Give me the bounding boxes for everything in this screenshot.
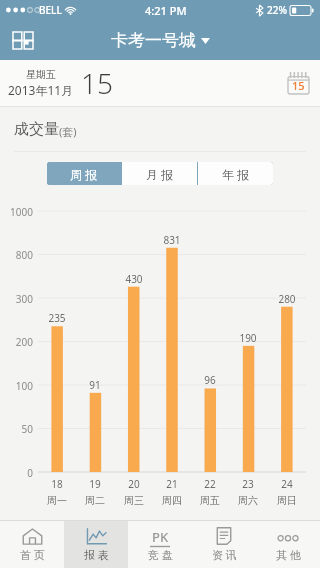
staticText: 其 他: [276, 547, 301, 562]
staticText: PK: [152, 528, 169, 545]
staticText: (套): [59, 124, 77, 139]
staticText: 周一: [38, 494, 76, 507]
staticText: 20: [115, 477, 153, 491]
staticText: 成交量: [14, 120, 59, 139]
button[interactable]: Menu: [6, 23, 40, 57]
staticText: 4:21 PM: [145, 3, 187, 18]
staticText: 91: [76, 378, 114, 392]
staticText: 21: [153, 477, 191, 491]
staticText: 15: [81, 64, 113, 102]
button[interactable]: 卡考一号城: [111, 30, 210, 51]
staticText: 22: [191, 477, 229, 491]
staticText: 430: [115, 272, 153, 286]
button[interactable]: 报 表: [64, 521, 128, 568]
button[interactable]: 年 报: [198, 162, 273, 185]
staticText: 100: [2, 379, 33, 393]
button[interactable]: 星期五: [0, 60, 320, 106]
staticText: 星期五: [26, 68, 56, 81]
staticText: 周 报: [70, 166, 98, 182]
button[interactable]: Calendar: [287, 72, 310, 95]
staticText: 280: [268, 292, 306, 306]
staticText: 2013年11月: [8, 82, 74, 98]
staticText: 竞 盘: [148, 547, 173, 562]
staticText: 卡考一号城: [111, 30, 196, 51]
staticText: 22%: [267, 3, 287, 17]
staticText: 831: [153, 233, 191, 247]
button[interactable]: PK: [128, 521, 192, 568]
staticText: BELL: [39, 3, 62, 17]
staticText: 月 报: [146, 166, 174, 182]
staticText: 周四: [153, 494, 191, 507]
staticText: 190: [229, 331, 267, 345]
staticText: 23: [229, 477, 267, 491]
staticText: 24: [268, 477, 306, 491]
staticText: 周六: [229, 494, 267, 507]
staticText: 200: [2, 335, 33, 349]
staticText: 50: [2, 422, 33, 436]
staticText: 周二: [76, 494, 114, 507]
button[interactable]: 月 报: [122, 162, 197, 185]
staticText: 235: [38, 311, 76, 325]
staticText: 周三: [115, 494, 153, 507]
staticText: 报 表: [84, 547, 109, 562]
staticText: 800: [2, 248, 33, 262]
staticText: 资 讯: [212, 547, 237, 562]
staticText: 周日: [268, 494, 306, 507]
staticText: 0: [2, 466, 33, 480]
staticText: 15: [292, 78, 305, 93]
staticText: 300: [2, 292, 33, 306]
button[interactable]: 其 他: [256, 521, 320, 568]
staticText: 18: [38, 477, 76, 491]
staticText: 1000: [2, 205, 33, 219]
staticText: 年 报: [222, 166, 250, 182]
staticText: 周五: [191, 494, 229, 507]
button[interactable]: 首 页: [0, 521, 64, 568]
button[interactable]: 周 报: [47, 162, 121, 185]
button[interactable]: 资 讯: [192, 521, 256, 568]
staticText: 96: [191, 373, 229, 387]
staticText: 19: [76, 477, 114, 491]
staticText: 首 页: [20, 547, 45, 562]
